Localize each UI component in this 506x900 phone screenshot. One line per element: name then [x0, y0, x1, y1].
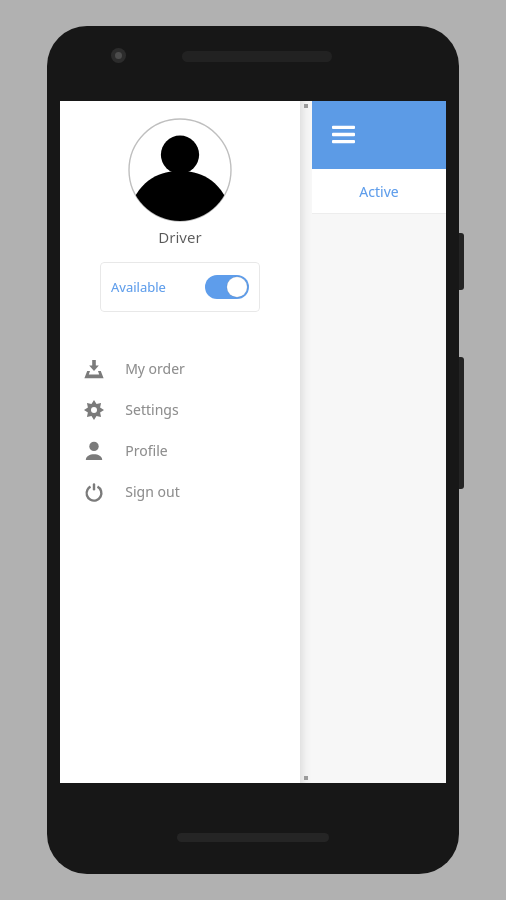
button[interactable]: Availability toggle: [205, 275, 249, 299]
staticText: Driver: [158, 227, 202, 247]
button[interactable]: Active: [312, 169, 446, 213]
staticText: Profile: [125, 441, 168, 460]
staticText: Active: [359, 182, 399, 201]
button[interactable]: Available: [100, 262, 260, 312]
staticText: My order: [125, 359, 185, 378]
button[interactable]: Settings: [60, 389, 300, 430]
button[interactable]: My order: [60, 348, 300, 389]
button[interactable]: Open navigation menu: [325, 116, 361, 152]
staticText: Sign out: [125, 482, 180, 501]
staticText: Available: [111, 278, 166, 296]
button[interactable]: Sign out: [60, 471, 300, 512]
button[interactable]: Profile: [60, 430, 300, 471]
staticText: Settings: [125, 400, 179, 419]
